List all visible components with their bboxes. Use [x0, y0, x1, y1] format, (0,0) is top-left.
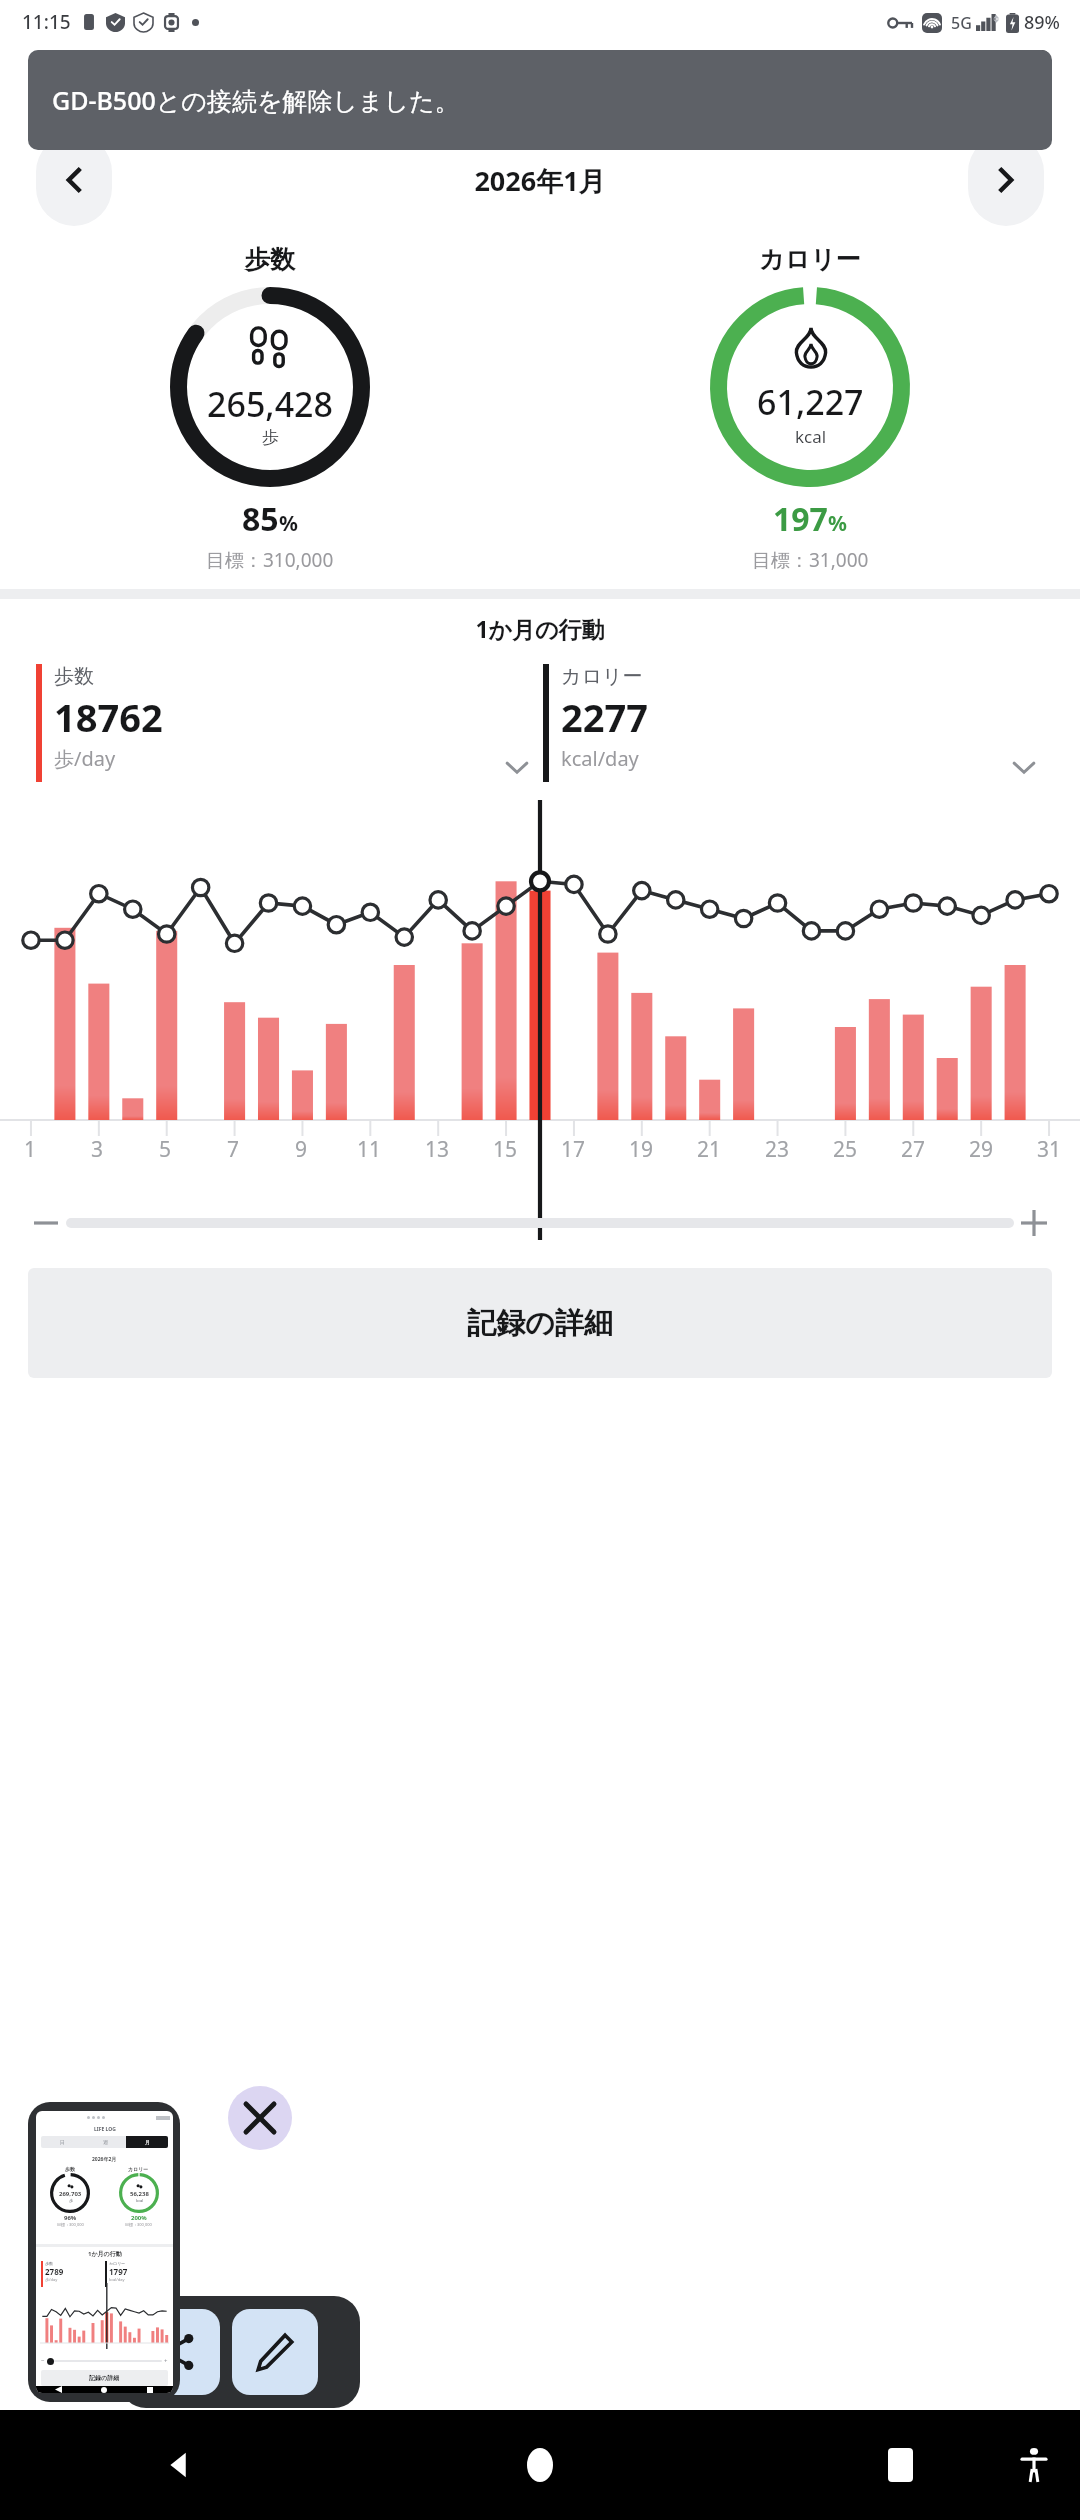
- button[interactable]: 記録の詳細: [28, 1268, 1052, 1378]
- staticText: 1797: [109, 2266, 128, 2277]
- staticText: 2026年2月: [92, 2156, 117, 2163]
- staticText: 13: [425, 1135, 450, 1164]
- button[interactable]: LIFE LOG: [28, 2102, 180, 2402]
- staticText: カロリー: [128, 2166, 149, 2172]
- staticText: 11: [357, 1135, 382, 1164]
- staticText: +: [164, 2357, 168, 2365]
- button[interactable]: 縮小: [26, 1203, 66, 1243]
- staticText: 歩数: [54, 664, 94, 689]
- staticText: kcal: [795, 425, 827, 448]
- staticText: 1か月の行動: [0, 613, 1080, 644]
- button[interactable]: 歩数: [36, 664, 543, 782]
- staticText: %: [279, 509, 298, 538]
- staticText: 2277: [561, 691, 648, 743]
- staticText: 15: [493, 1135, 518, 1164]
- button[interactable]: 履歴: [720, 2410, 1080, 2520]
- staticText: kcal: [136, 2198, 144, 2203]
- button[interactable]: ホーム: [360, 2410, 720, 2520]
- staticText: 2026年1月: [474, 162, 606, 199]
- staticText: 歩: [262, 427, 279, 448]
- staticText: 目標：300,000: [125, 2222, 152, 2227]
- staticText: 目標：31,000: [752, 547, 869, 573]
- staticText: kcal/day: [109, 2277, 125, 2282]
- staticText: 61,227: [757, 379, 864, 425]
- staticText: 歩数: [245, 244, 295, 275]
- button[interactable]: 編集: [232, 2309, 318, 2395]
- staticText: 3: [91, 1135, 104, 1164]
- button[interactable]: カロリー: [543, 664, 1050, 782]
- staticText: −: [41, 2357, 45, 2365]
- staticText: 17: [561, 1135, 586, 1164]
- staticText: 269,703: [59, 2190, 82, 2198]
- button[interactable]: GD-B500との接続を解除しました。: [28, 50, 1052, 150]
- staticText: 25: [833, 1135, 858, 1164]
- staticText: %: [828, 509, 847, 538]
- button[interactable]: 展開: [491, 664, 543, 782]
- staticText: 歩/day: [45, 2277, 58, 2282]
- staticText: 歩: [69, 2198, 73, 2203]
- button[interactable]: 週: [370, 50, 710, 112]
- staticText: 197: [773, 497, 828, 541]
- staticText: 56,238: [130, 2190, 149, 2198]
- button[interactable]: 閉じる: [228, 2086, 292, 2150]
- staticText: 歩数: [65, 2166, 75, 2172]
- staticText: 5G: [951, 12, 972, 34]
- staticText: 5: [159, 1135, 172, 1164]
- staticText: 記録の詳細: [89, 2374, 120, 2382]
- staticText: 目標：300,000: [57, 2222, 84, 2227]
- staticText: 27: [901, 1135, 926, 1164]
- staticText: 96%: [64, 2214, 77, 2222]
- button[interactable]: カロリー: [540, 244, 1080, 573]
- button[interactable]: 展開: [998, 664, 1050, 782]
- staticText: 7: [227, 1135, 240, 1164]
- staticText: 265,428: [207, 381, 333, 427]
- staticText: 2789: [45, 2266, 64, 2277]
- staticText: 歩数: [45, 2261, 53, 2266]
- staticText: 89%: [1024, 10, 1060, 35]
- staticText: 23: [765, 1135, 790, 1164]
- staticText: LIFE LOG: [94, 2126, 116, 2133]
- staticText: カロリー: [109, 2261, 126, 2266]
- staticText: 1か月の行動: [88, 2250, 122, 2258]
- staticText: 目標：310,000: [206, 547, 334, 573]
- staticText: kcal/day: [561, 745, 639, 772]
- button[interactable]: ユーザー補助: [1012, 2443, 1056, 2487]
- staticText: 18762: [54, 691, 163, 743]
- button[interactable]: 月: [710, 50, 1050, 112]
- staticText: 29: [969, 1135, 994, 1164]
- staticText: 日: [60, 2139, 65, 2145]
- button[interactable]: 前の月: [36, 134, 112, 226]
- button[interactable]: 拡大: [1014, 1203, 1054, 1243]
- button[interactable]: 日: [30, 50, 370, 112]
- button[interactable]: 共有: [134, 2309, 220, 2395]
- staticText: 歩/day: [54, 745, 116, 772]
- staticText: 9: [295, 1135, 308, 1164]
- staticText: 85: [242, 497, 279, 541]
- staticText: カロリー: [759, 244, 861, 275]
- staticText: 週: [103, 2139, 108, 2145]
- staticText: 月: [145, 2139, 150, 2145]
- staticText: 31: [1037, 1135, 1062, 1164]
- staticText: カロリー: [561, 664, 643, 689]
- button[interactable]: 次の月: [968, 134, 1044, 226]
- staticText: 200%: [131, 2214, 147, 2222]
- staticText: 19: [629, 1135, 654, 1164]
- button[interactable]: 戻る: [0, 2410, 360, 2520]
- staticText: 記録の詳細: [467, 1305, 613, 1342]
- staticText: GD-B500との接続を解除しました。: [52, 83, 460, 117]
- staticText: 日: [188, 66, 213, 97]
- staticText: 1: [24, 1135, 37, 1164]
- staticText: 11:15: [22, 9, 71, 35]
- staticText: 21: [697, 1135, 722, 1164]
- button[interactable]: 歩数: [0, 244, 540, 573]
